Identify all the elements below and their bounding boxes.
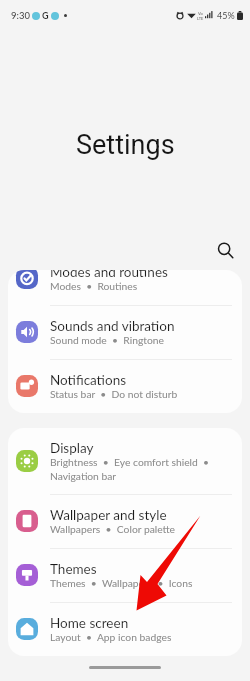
staticText: Notifications <box>50 372 127 388</box>
button[interactable]: Notifications <box>8 359 242 413</box>
staticText: Modes and routines <box>50 270 168 280</box>
staticText: G <box>42 10 49 21</box>
staticText: Modes • Routines <box>50 280 138 292</box>
staticText: Wallpaper and style <box>50 507 167 523</box>
staticText: Display <box>50 440 94 456</box>
staticText: Layout • App icon badges <box>50 631 172 643</box>
staticText: Themes • Wallpapers • Icons <box>50 577 193 589</box>
button[interactable]: Search <box>209 234 241 266</box>
button[interactable]: Sounds and vibration <box>8 305 242 359</box>
staticText: 9:30 <box>11 10 30 21</box>
staticText: Home screen <box>50 615 129 631</box>
staticText: 45% <box>217 10 235 21</box>
staticText: Brightness • Eye comfort shield • Naviga… <box>50 456 210 482</box>
staticText: Status bar • Do not disturb <box>50 388 178 400</box>
button[interactable]: Wallpaper and style <box>8 494 242 548</box>
staticText: Wallpapers • Color palette <box>50 523 176 535</box>
staticText: Themes <box>50 561 97 577</box>
button[interactable]: Themes <box>8 548 242 602</box>
button[interactable]: Modes and routines <box>8 270 242 305</box>
staticText: Vo <box>198 11 203 16</box>
staticText: Sound mode • Ringtone <box>50 334 164 346</box>
staticText: Sounds and vibration <box>50 318 175 334</box>
staticText: Settings <box>76 129 175 161</box>
staticText: LTE <box>197 16 204 21</box>
button[interactable]: Home screen <box>8 602 242 656</box>
button[interactable]: Display <box>8 428 242 494</box>
